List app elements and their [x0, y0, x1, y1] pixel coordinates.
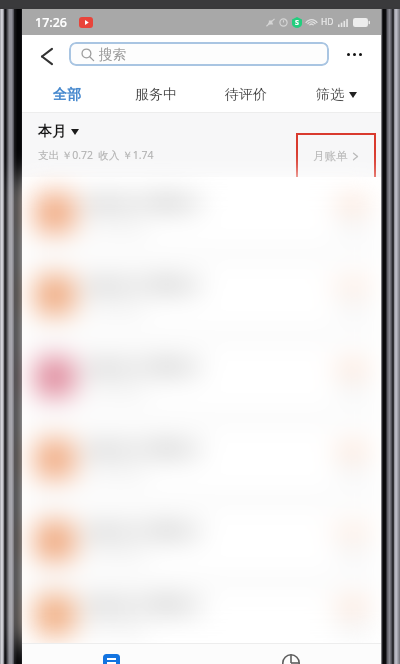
staticText: 06-12 09:20 — [85, 218, 145, 233]
button[interactable]: 月账单 — [313, 149, 360, 163]
staticText: 转账-商户消费支付 — [85, 193, 202, 212]
staticText: 月账单 — [313, 149, 348, 163]
button[interactable]: 搜索 — [69, 42, 329, 66]
staticText: 券 — [47, 449, 64, 470]
staticText: 券 — [47, 367, 64, 388]
staticText: 17:26 — [35, 14, 68, 31]
staticText: 服务中 — [135, 86, 177, 104]
button[interactable]: 筛选 — [291, 77, 381, 112]
staticText: 筛选 — [316, 86, 344, 104]
button[interactable]: Bills — [22, 644, 201, 664]
staticText: 06-17 09:25 — [85, 620, 145, 635]
button[interactable]: Statistics — [201, 644, 381, 664]
staticText: 券 — [47, 203, 64, 224]
staticText: 券 — [47, 531, 64, 552]
staticText: 转账-商户消费支付 — [85, 521, 202, 540]
button[interactable]: 券 — [22, 177, 381, 643]
staticText: 全部 — [53, 86, 81, 104]
staticText: 本月 — [38, 123, 66, 141]
staticText: 券 — [47, 605, 64, 626]
staticText: 转账-商户消费支付 — [85, 595, 202, 614]
button[interactable]: 服务中 — [111, 77, 201, 112]
staticText: 06-14 09:22 — [85, 382, 145, 397]
button[interactable]: 待评价 — [201, 77, 291, 112]
staticText: 券 — [47, 285, 64, 306]
staticText: 06-16 09:24 — [85, 546, 145, 561]
staticText: 06-13 09:21 — [85, 300, 145, 315]
button[interactable]: More options — [340, 41, 368, 67]
staticText: HD — [321, 16, 334, 28]
staticText: 转账-商户消费支付 — [85, 357, 202, 376]
button[interactable]: Back — [34, 43, 58, 69]
staticText: 支出 ￥0.72 收入 ￥1.74 — [38, 148, 154, 162]
staticText: 转账-商户消费支付 — [85, 275, 202, 294]
staticText: S — [295, 18, 299, 28]
staticText: 待评价 — [225, 86, 267, 104]
staticText: 搜索 — [99, 46, 126, 63]
staticText: 转账-商户消费支付 — [85, 439, 202, 458]
staticText: 06-15 09:23 — [85, 464, 145, 479]
button[interactable]: 全部 — [22, 77, 111, 112]
